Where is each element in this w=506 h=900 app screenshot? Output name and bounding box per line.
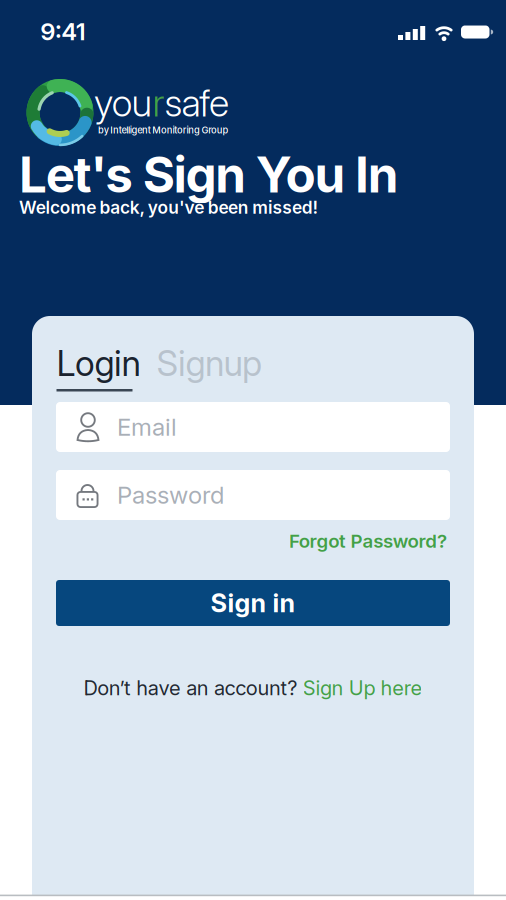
staticText: Don’t have an account? [84, 676, 303, 700]
button[interactable]: Email [56, 402, 450, 452]
button[interactable]: Signup [156, 346, 262, 381]
staticText: safe [165, 81, 229, 125]
staticText: Sign Up here [303, 676, 422, 700]
button[interactable]: Sign Up here [303, 676, 422, 700]
button[interactable]: Sign in [56, 580, 450, 626]
staticText: Forgot Password? [289, 530, 447, 552]
staticText: Login [56, 343, 140, 384]
staticText: Let's Sign You In [19, 145, 399, 204]
staticText: Welcome back, you've been missed! [19, 197, 318, 218]
button[interactable]: Login [56, 346, 140, 391]
staticText: by Intelligent Monitoring Group [98, 124, 228, 135]
button[interactable]: Password [56, 470, 450, 520]
staticText: Email [117, 413, 177, 441]
staticText: Sign in [210, 588, 295, 618]
staticText: Password [117, 481, 224, 509]
staticText: you [94, 81, 153, 125]
staticText: Signup [156, 343, 262, 384]
staticText: 9:41 [40, 17, 86, 46]
staticText: r [153, 81, 165, 125]
button[interactable]: Forgot Password? [247, 530, 447, 552]
